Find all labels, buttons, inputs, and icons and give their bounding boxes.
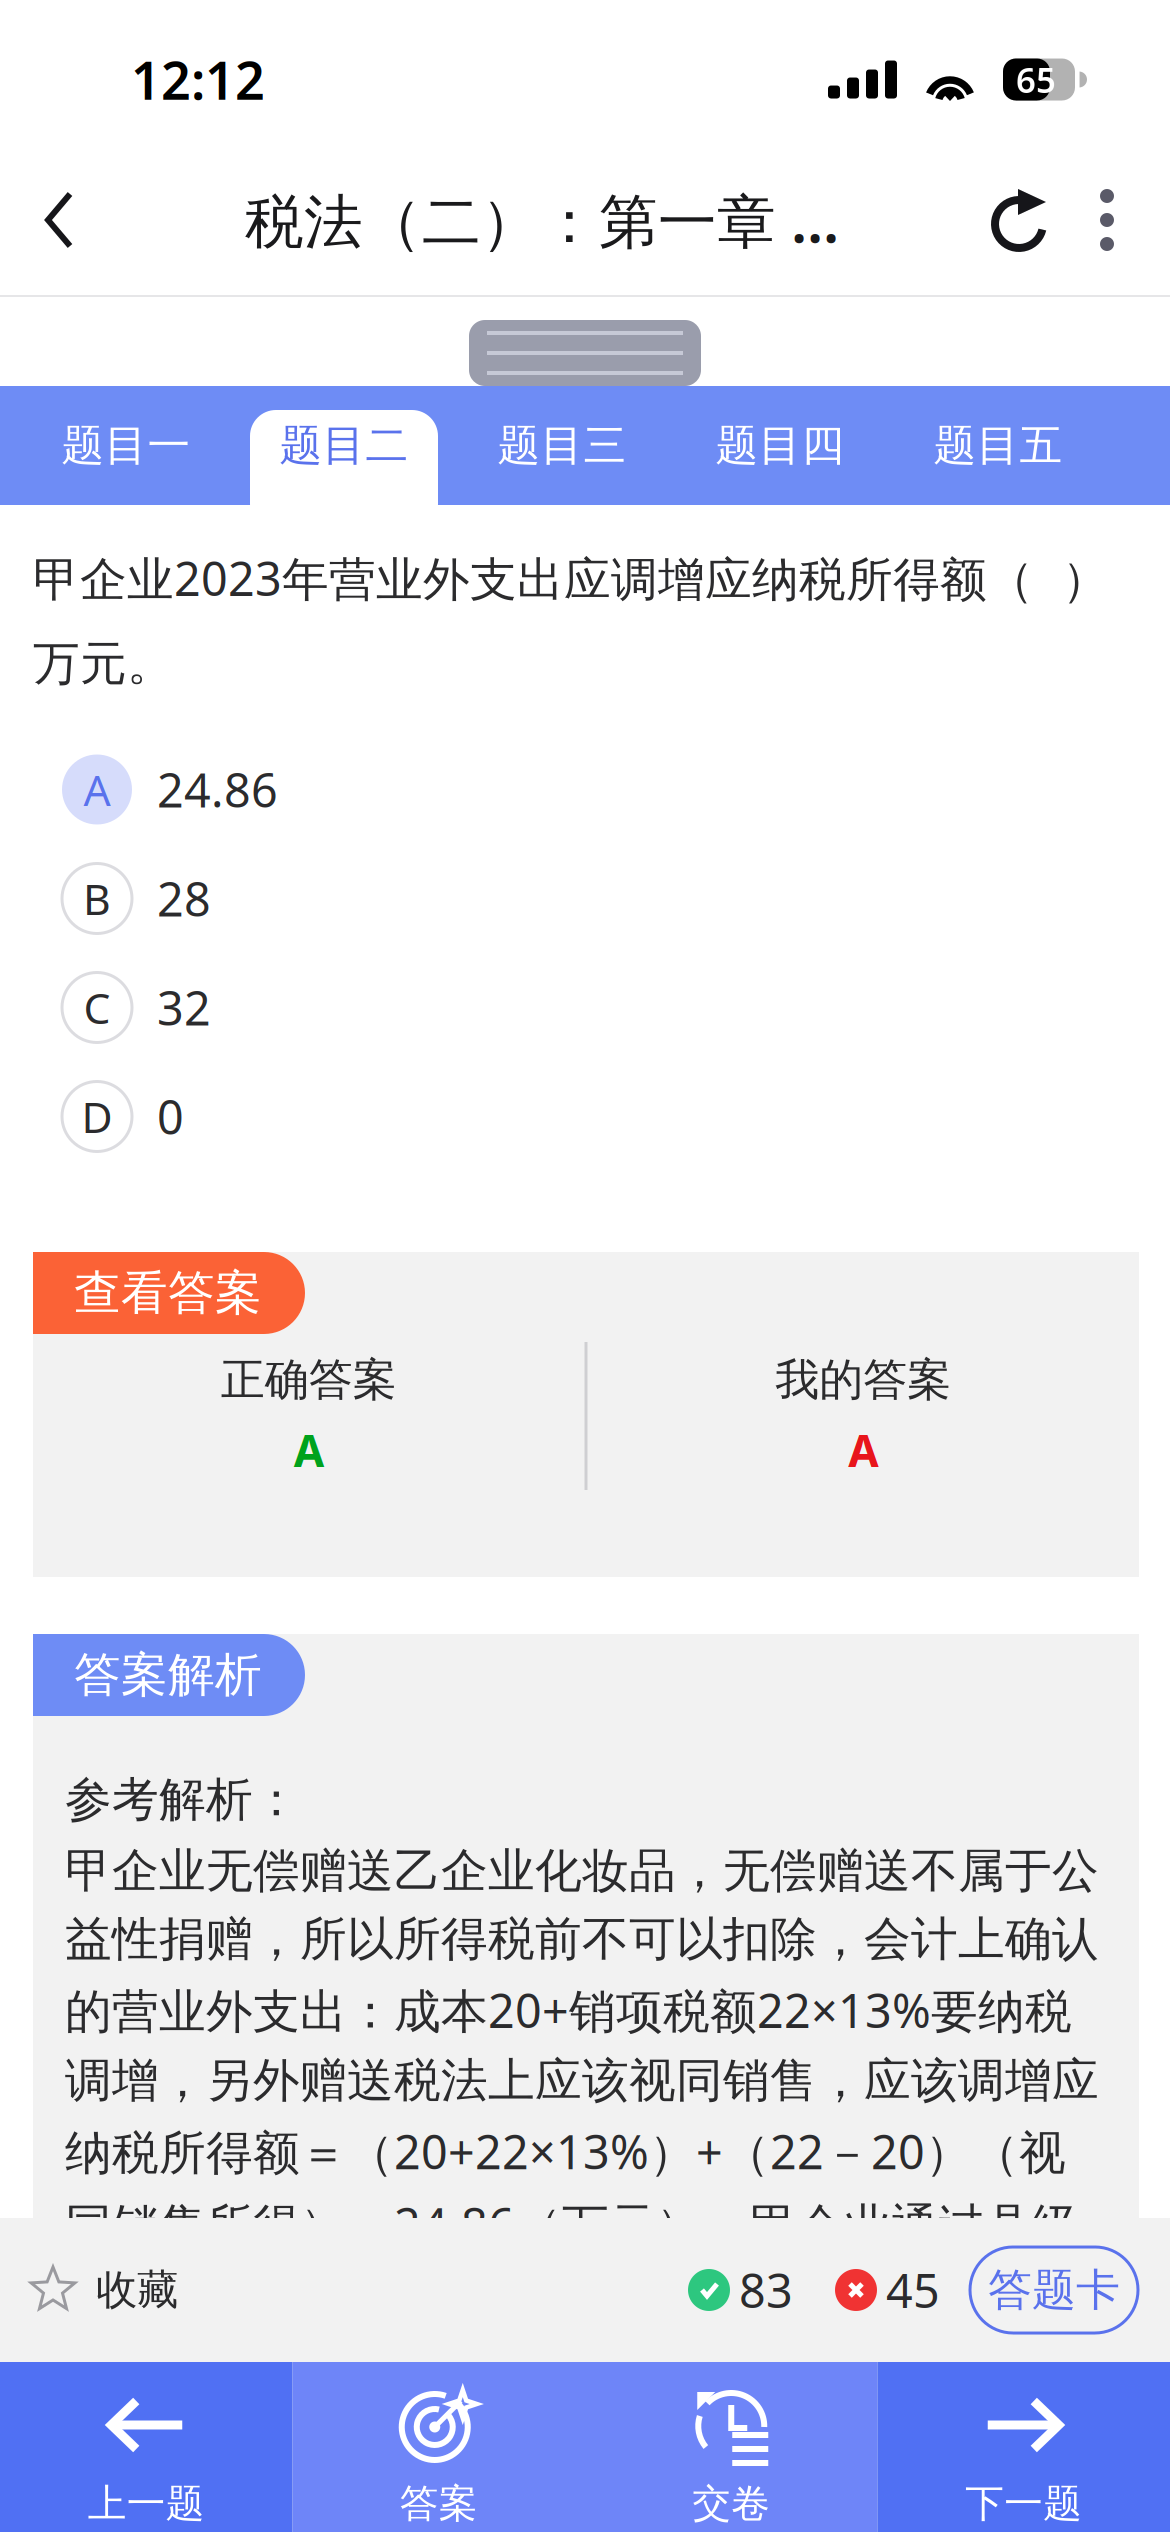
staticText: D xyxy=(81,1088,112,1145)
button[interactable]: B xyxy=(0,844,1170,953)
button[interactable]: 题目二 xyxy=(235,386,453,505)
staticText: 0 xyxy=(157,1085,184,1147)
staticText: 题目二 xyxy=(279,419,408,472)
staticText: 83 xyxy=(739,2259,793,2321)
button[interactable]: More options xyxy=(1076,145,1138,295)
button[interactable]: 收藏 xyxy=(0,2218,178,2362)
staticText: 甲企业2023年营业外支出应调增应纳税所得额（ ）万元。 xyxy=(33,547,1109,692)
staticText: 下一题 xyxy=(965,2480,1082,2527)
staticText: 交卷 xyxy=(692,2480,770,2527)
staticText: 我的答案 xyxy=(775,1353,951,1407)
button[interactable]: 上一题 xyxy=(0,2362,292,2532)
staticText: 65 xyxy=(1016,56,1056,102)
button[interactable]: 下一题 xyxy=(877,2362,1170,2532)
staticText: 收藏 xyxy=(96,2265,178,2315)
staticText: 12:12 xyxy=(131,45,265,114)
staticText: 税法（二）：第一章 ... xyxy=(245,181,839,259)
staticText: A xyxy=(294,1421,324,1479)
button[interactable]: C xyxy=(0,953,1170,1062)
staticText: A xyxy=(848,1421,878,1479)
staticText: 答案 xyxy=(400,2480,478,2527)
staticText: C xyxy=(83,979,110,1036)
staticText: 28 xyxy=(157,867,211,929)
staticText: B xyxy=(83,870,111,927)
staticText: 上一题 xyxy=(88,2480,205,2527)
button[interactable]: 查看答案 xyxy=(33,1252,305,1334)
button[interactable]: Back xyxy=(0,145,118,295)
staticText: 题目一 xyxy=(61,419,190,472)
staticText: 答题卡 xyxy=(988,2263,1120,2317)
staticText: 参考解析： xyxy=(65,1771,300,1828)
staticText: 答案解析 xyxy=(74,1646,262,1704)
staticText: A xyxy=(83,761,110,818)
button[interactable]: A xyxy=(0,735,1170,844)
button[interactable]: 题目三 xyxy=(453,386,671,505)
button[interactable]: 答案解析 xyxy=(33,1634,305,1716)
staticText: 查看答案 xyxy=(74,1264,262,1322)
button[interactable]: 答题卡 xyxy=(970,2247,1138,2333)
staticText: 题目五 xyxy=(933,419,1062,472)
staticText: 45 xyxy=(886,2259,940,2321)
button[interactable]: 答案 xyxy=(292,2362,585,2532)
staticText: 24.86 xyxy=(157,758,278,820)
staticText: 32 xyxy=(157,976,211,1038)
button[interactable]: 交卷 xyxy=(585,2362,877,2532)
button[interactable]: 题目五 xyxy=(889,386,1107,505)
button[interactable]: D xyxy=(0,1062,1170,1171)
staticText: 题目四 xyxy=(715,419,844,472)
staticText: 甲企业无偿赠送乙企业化妆品，无偿赠送不属于公益性捐赠，所以所得税前不可以扣除，会… xyxy=(65,1842,1099,2392)
button[interactable]: 题目四 xyxy=(671,386,889,505)
button[interactable]: Refresh xyxy=(966,145,1076,295)
staticText: 正确答案 xyxy=(221,1353,397,1407)
staticText: 题目三 xyxy=(497,419,626,472)
button[interactable]: 题目一 xyxy=(17,386,235,505)
